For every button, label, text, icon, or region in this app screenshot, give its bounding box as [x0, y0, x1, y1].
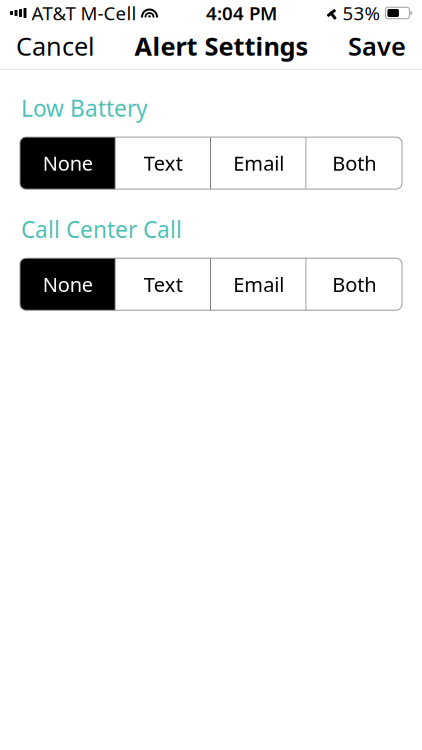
staticText: Call Center Call: [21, 214, 182, 244]
staticText: Both: [332, 150, 376, 176]
button[interactable]: Both: [306, 258, 402, 310]
button[interactable]: Text: [115, 258, 211, 310]
staticText: Low Battery: [21, 93, 148, 123]
staticText: Save: [348, 29, 406, 63]
button[interactable]: Text: [115, 137, 211, 189]
staticText: Cancel: [16, 29, 95, 63]
staticText: Email: [233, 150, 284, 176]
button[interactable]: Save: [332, 21, 422, 71]
staticText: Both: [332, 271, 376, 297]
button[interactable]: None: [20, 137, 115, 189]
staticText: Text: [144, 150, 183, 176]
staticText: 53%: [342, 1, 380, 25]
button[interactable]: Email: [211, 137, 306, 189]
button[interactable]: None: [20, 258, 115, 310]
button[interactable]: Cancel: [0, 21, 111, 71]
staticText: None: [43, 271, 93, 297]
staticText: Alert Settings: [134, 29, 308, 63]
staticText: Text: [144, 271, 183, 297]
staticText: Email: [233, 271, 284, 297]
button[interactable]: Both: [306, 137, 402, 189]
staticText: AT&T M-Cell: [31, 1, 136, 25]
staticText: None: [43, 150, 93, 176]
staticText: 4:04 PM: [206, 1, 277, 25]
button[interactable]: Email: [211, 258, 306, 310]
